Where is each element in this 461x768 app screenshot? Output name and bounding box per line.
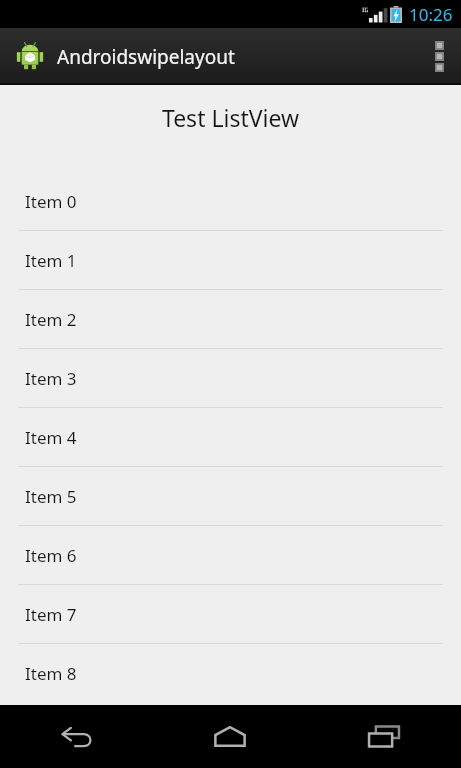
- staticText: 10:26: [409, 3, 453, 26]
- button[interactable]: Item 1: [0, 231, 461, 289]
- staticText: Item 3: [25, 367, 77, 390]
- button[interactable]: Recent apps: [307, 705, 461, 768]
- staticText: Item 1: [25, 249, 77, 272]
- button[interactable]: Item 3: [0, 349, 461, 407]
- button[interactable]: Item 7: [0, 585, 461, 643]
- staticText: Item 4: [25, 426, 77, 449]
- button[interactable]: Item 8: [0, 644, 461, 702]
- staticText: Androidswipelayout: [57, 44, 235, 70]
- button[interactable]: Item 5: [0, 467, 461, 525]
- staticText: Item 6: [25, 544, 77, 567]
- staticText: Item 8: [25, 662, 77, 685]
- button[interactable]: Item 2: [0, 290, 461, 348]
- button[interactable]: Item 4: [0, 408, 461, 466]
- button[interactable]: Back: [0, 705, 153, 768]
- staticText: Item 5: [25, 485, 77, 508]
- staticText: Test ListView: [0, 102, 461, 133]
- button[interactable]: Home: [153, 705, 307, 768]
- staticText: Item 7: [25, 603, 77, 626]
- staticText: Item 0: [25, 190, 77, 213]
- button[interactable]: Item 0: [0, 172, 461, 230]
- button[interactable]: Item 6: [0, 526, 461, 584]
- staticText: Item 2: [25, 308, 77, 331]
- button[interactable]: More options: [417, 28, 461, 85]
